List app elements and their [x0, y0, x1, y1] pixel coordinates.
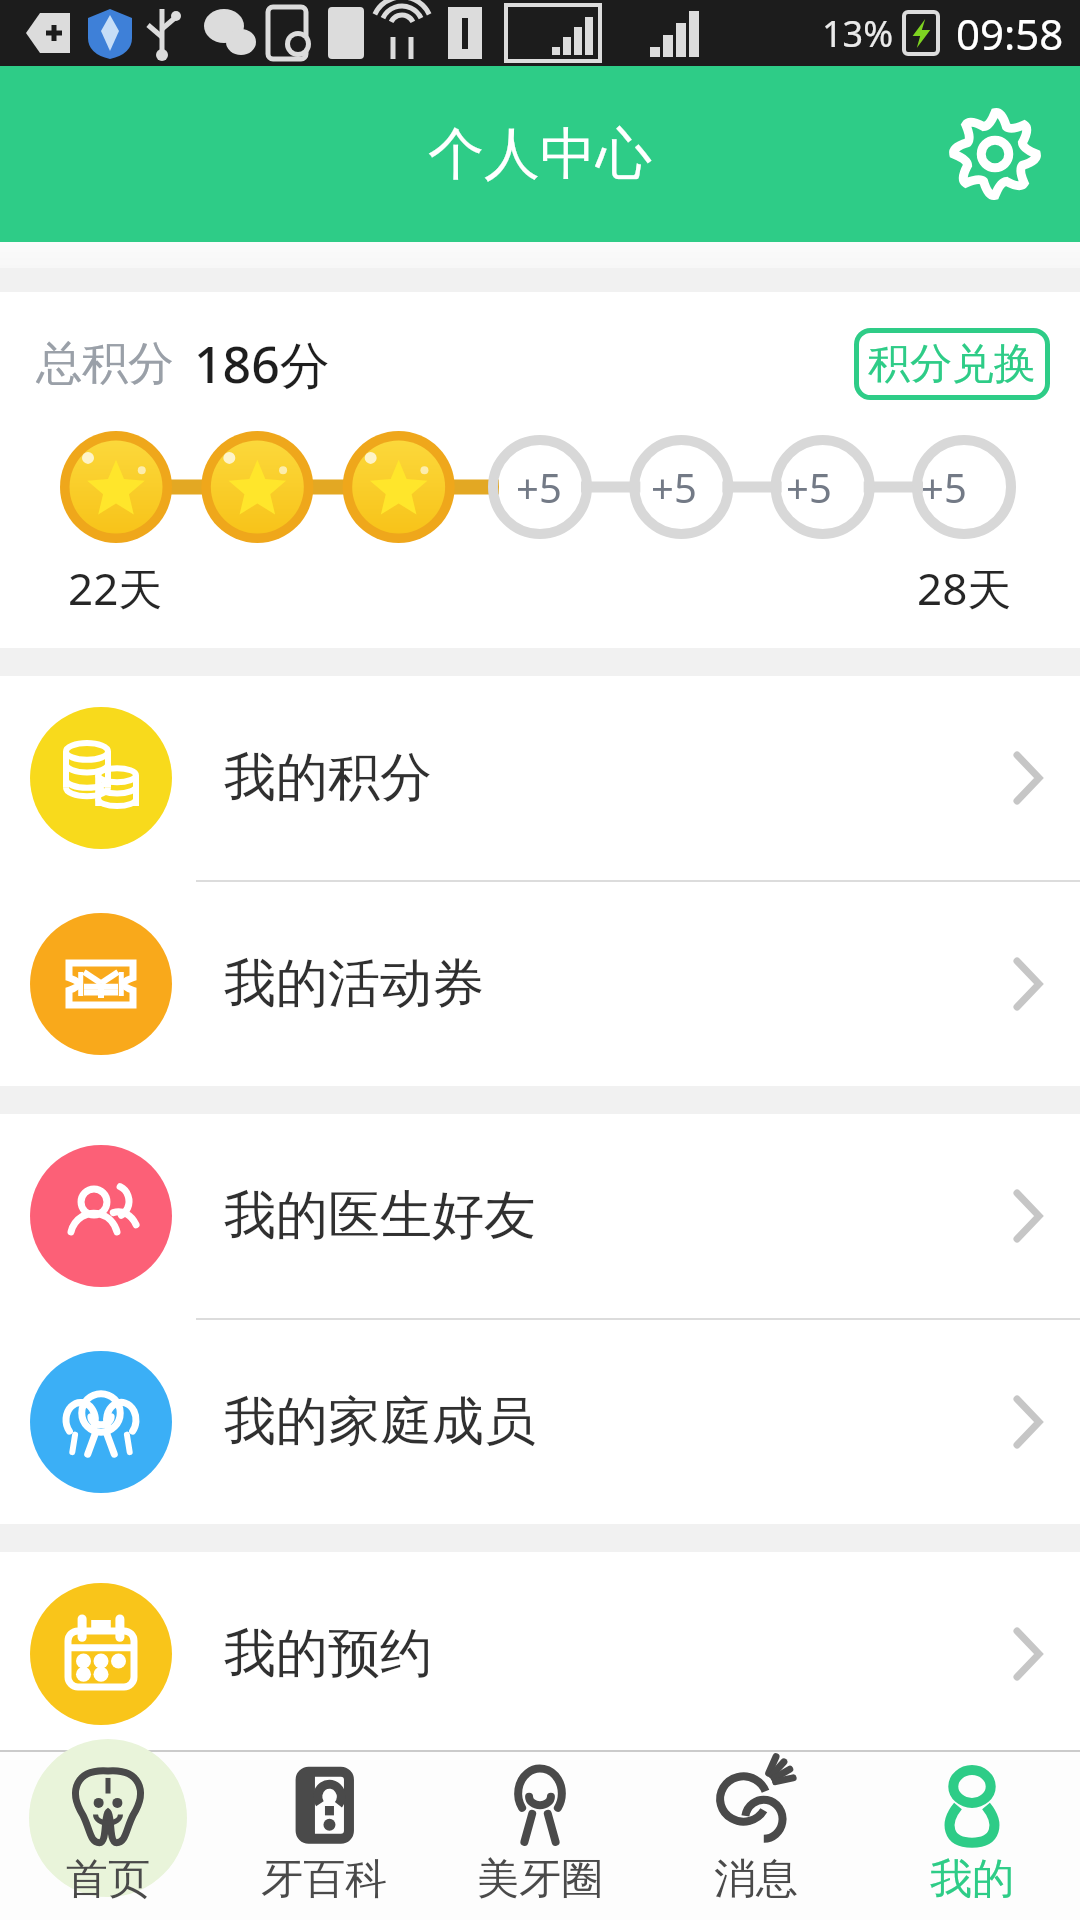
staticText: +5	[651, 460, 697, 514]
staticText: 我的就诊	[224, 1806, 432, 1872]
staticText: 我的活动券	[224, 951, 484, 1017]
staticText: 个人中心	[428, 119, 652, 190]
staticText: 186分	[194, 330, 330, 398]
button[interactable]: 美牙圈	[432, 1752, 648, 1920]
staticText: +5	[921, 460, 967, 514]
staticText: 我的积分	[224, 745, 432, 811]
staticText: 28天	[917, 558, 1012, 618]
staticText: +5	[786, 460, 832, 514]
button[interactable]: 设置	[940, 99, 1050, 209]
staticText: 美牙圈	[477, 1853, 603, 1906]
button[interactable]: 首页	[0, 1752, 216, 1920]
staticText: 09:58	[956, 5, 1064, 62]
button[interactable]: 我的积分	[0, 676, 1080, 880]
button[interactable]: 我的医生好友	[0, 1114, 1080, 1318]
button[interactable]: 我的	[864, 1752, 1080, 1920]
button[interactable]: 牙百科	[216, 1752, 432, 1920]
button[interactable]: 我的预约	[0, 1552, 1080, 1756]
staticText: 13%	[822, 9, 894, 58]
staticText: 我的医生好友	[224, 1183, 536, 1249]
staticText: 我的	[930, 1853, 1014, 1906]
staticText: +5	[516, 460, 562, 514]
staticText: 总积分	[36, 335, 174, 393]
staticText: 我的预约	[224, 1621, 432, 1687]
button[interactable]: 消息	[648, 1752, 864, 1920]
button[interactable]: 我的家庭成员	[0, 1320, 1080, 1524]
staticText: 我的家庭成员	[224, 1389, 536, 1455]
staticText: 首页	[66, 1853, 150, 1906]
staticText: 积分兑换	[868, 338, 1036, 391]
staticText: 消息	[714, 1853, 798, 1906]
button[interactable]: 我的活动券	[0, 882, 1080, 1086]
staticText: 牙百科	[261, 1853, 387, 1906]
button[interactable]: 积分兑换	[854, 328, 1050, 400]
staticText: 22天	[68, 558, 163, 618]
button[interactable]: 我的就诊	[0, 1758, 1080, 1920]
